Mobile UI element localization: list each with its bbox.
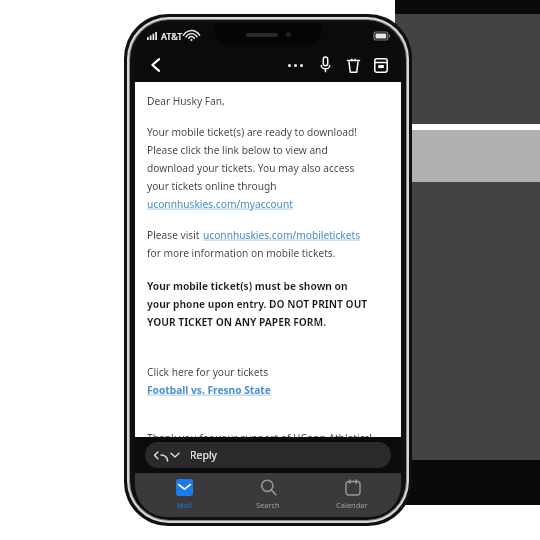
button[interactable]: Search (233, 473, 303, 517)
staticText: Please visit (147, 228, 203, 242)
staticText: Your mobile ticket(s) must be shown on (147, 279, 348, 293)
button[interactable]: Reply (145, 442, 391, 468)
staticText: uconnhuskies.com/myaccount (147, 197, 293, 211)
staticText: AT&T (161, 30, 183, 42)
button[interactable]: Mail (149, 473, 219, 517)
button[interactable]: Back (141, 50, 171, 80)
button[interactable]: Football vs. Fresno State (147, 383, 271, 397)
button[interactable]: Calendar (317, 473, 387, 517)
staticText: Search (256, 500, 280, 510)
button[interactable]: More options (279, 50, 311, 80)
staticText: YOUR TICKET ON ANY PAPER FORM. (147, 315, 327, 329)
staticText: Dear Husky Fan, (147, 94, 225, 108)
staticText: for more information on mobile tickets. (147, 246, 336, 260)
button[interactable]: Archive (367, 50, 395, 80)
staticText: Click here for your tickets (147, 365, 269, 379)
staticText: Reply (190, 448, 217, 462)
button[interactable]: Please visit (147, 228, 361, 242)
staticText: your phone upon entry. DO NOT PRINT OUT (147, 297, 368, 311)
staticText: Mail (177, 500, 192, 510)
button[interactable]: Voice (311, 50, 339, 80)
staticText: Thank you for your support of UConn Athl… (147, 431, 373, 437)
staticText: download your tickets. You may also acce… (147, 161, 355, 175)
button[interactable]: uconnhuskies.com/myaccount (147, 197, 293, 211)
staticText: uconnhuskies.com/mobiletickets (203, 228, 361, 242)
staticText: Your mobile ticket(s) are ready to downl… (147, 125, 358, 139)
staticText: Football vs. Fresno State (147, 383, 271, 397)
staticText: Calendar (336, 500, 368, 510)
staticText: your tickets online through (147, 179, 277, 193)
button[interactable]: Delete (339, 50, 367, 80)
staticText: Please click the link below to view and (147, 143, 328, 157)
